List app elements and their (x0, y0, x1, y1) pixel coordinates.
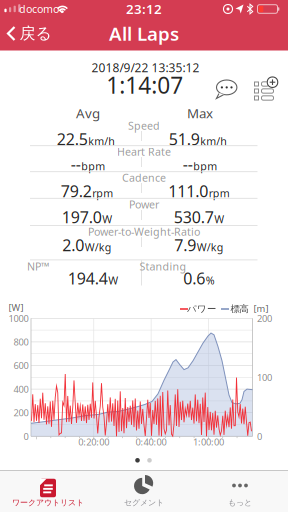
staticText: W/kg (197, 240, 224, 254)
staticText: 51.9 (169, 128, 200, 150)
staticText: 0:40:00 (136, 436, 167, 448)
staticText: 標高 (230, 303, 248, 315)
staticText: W/kg (85, 240, 112, 254)
staticText: [m] (253, 302, 268, 315)
staticText: km/h (88, 134, 115, 148)
staticText: 197.0 (62, 206, 102, 228)
button[interactable]: Add lap note (254, 77, 280, 102)
staticText: 194.4 (68, 268, 108, 289)
staticText: Avg (76, 104, 100, 122)
staticText: bpm (81, 159, 105, 173)
staticText: W (214, 212, 224, 226)
staticText: 200 (257, 312, 272, 324)
button[interactable]: もっと (192, 471, 288, 512)
staticText: docomo (19, 2, 59, 16)
staticText: All Laps (109, 21, 179, 46)
staticText: 111.0 (168, 180, 208, 202)
staticText: Power-to-Weight-Ratio (88, 224, 200, 239)
staticText: 0.6 (183, 268, 205, 289)
staticText: 2018/9/22 13:35:12 (91, 59, 199, 75)
staticText: 0 (257, 430, 262, 442)
staticText: -- (71, 153, 81, 175)
staticText: もっと (228, 498, 252, 507)
staticText: 530.7 (174, 206, 214, 228)
staticText: Cadence (122, 171, 166, 185)
staticText: [W] (8, 301, 23, 314)
staticText: 戻る (19, 24, 51, 43)
staticText: Heart Rate (117, 145, 171, 159)
staticText: -- (183, 153, 193, 175)
staticText: 0 (23, 430, 28, 442)
staticText: 400 (13, 383, 28, 395)
staticText: 100 (257, 371, 272, 383)
staticText: パワー (187, 303, 216, 315)
staticText: 200 (13, 406, 28, 419)
staticText: Max (187, 104, 213, 122)
staticText: 23:12 (126, 0, 162, 18)
button[interactable]: Back (3, 18, 55, 48)
staticText: ワークアウトリスト (12, 498, 84, 507)
staticText: rpm (92, 186, 113, 200)
staticText: 79.2 (61, 180, 92, 202)
staticText: 0:20:00 (78, 436, 109, 448)
staticText: 7.9 (174, 234, 196, 256)
staticText: 1:00:00 (193, 436, 224, 448)
staticText: 2.0 (62, 234, 84, 256)
staticText: NP™ (27, 259, 49, 273)
staticText: 800 (13, 336, 28, 348)
staticText: 1:14:07 (106, 70, 183, 100)
staticText: % (206, 273, 215, 287)
staticText: rpm (209, 186, 230, 200)
staticText: W (108, 273, 118, 287)
staticText: 1000 (8, 312, 28, 324)
staticText: Standing (139, 259, 186, 273)
staticText: セグメント (124, 498, 164, 507)
staticText: Speed (128, 119, 160, 133)
staticText: km/h (200, 134, 227, 148)
button[interactable]: セグメント (96, 471, 192, 512)
staticText: 22.5 (57, 128, 88, 150)
staticText: 600 (13, 359, 28, 372)
staticText: Power (129, 197, 159, 211)
button[interactable]: ワークアウトリスト (0, 471, 96, 512)
staticText: bpm (193, 159, 217, 173)
button[interactable]: Comments (215, 79, 239, 99)
staticText: W (102, 212, 112, 226)
